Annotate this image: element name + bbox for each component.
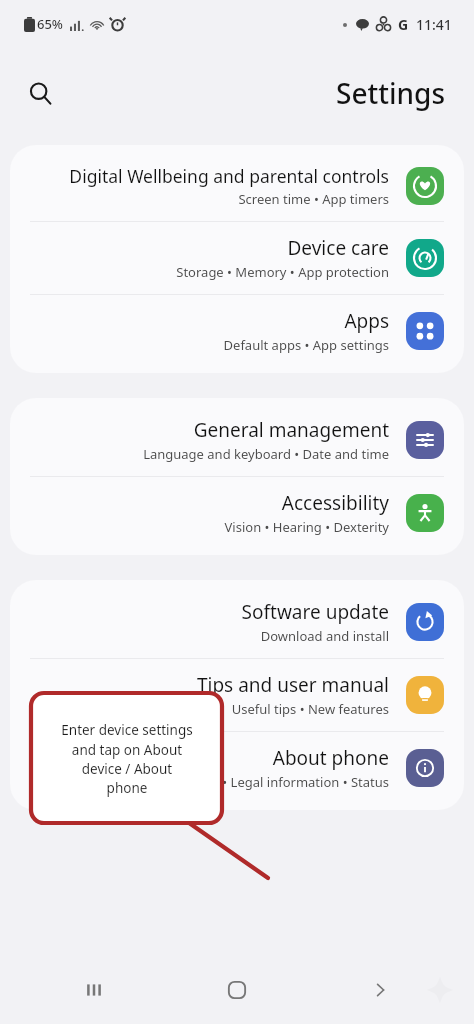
staticText: Settings bbox=[336, 74, 446, 112]
button[interactable]: General management bbox=[10, 404, 464, 476]
staticText: 11:41 bbox=[416, 15, 452, 34]
staticText: Phone name • Legal information • Status bbox=[141, 773, 389, 791]
staticText: G bbox=[398, 15, 409, 34]
staticText: Accessibility bbox=[281, 490, 389, 516]
button[interactable]: Accessibility bbox=[10, 477, 464, 549]
staticText: General management bbox=[193, 417, 389, 443]
staticText: Screen time • App timers bbox=[238, 190, 389, 208]
button[interactable]: Search bbox=[16, 69, 64, 117]
button[interactable]: About phone bbox=[10, 732, 464, 804]
staticText: Enter device settings and tap on About d… bbox=[61, 721, 193, 797]
staticText: About phone bbox=[272, 745, 389, 771]
button[interactable]: Software update bbox=[10, 586, 464, 658]
button[interactable]: Back bbox=[356, 966, 404, 1014]
button[interactable]: Recents bbox=[70, 966, 118, 1014]
staticText: 65% bbox=[37, 15, 63, 33]
button[interactable]: Device care bbox=[10, 222, 464, 294]
staticText: Language and keyboard • Date and time bbox=[143, 445, 389, 463]
button[interactable]: Tips and user manual bbox=[10, 659, 464, 731]
staticText: Software update bbox=[241, 599, 389, 625]
button[interactable]: Apps bbox=[10, 295, 464, 367]
staticText: Device care bbox=[287, 235, 389, 261]
staticText: Default apps • App settings bbox=[223, 336, 389, 354]
button[interactable]: Home bbox=[213, 966, 261, 1014]
staticText: Apps bbox=[344, 308, 389, 334]
button[interactable]: Digital Wellbeing and parental controls bbox=[10, 151, 464, 221]
staticText: Tips and user manual bbox=[196, 672, 389, 698]
staticText: Download and install bbox=[260, 627, 389, 645]
staticText: Storage • Memory • App protection bbox=[176, 263, 389, 281]
staticText: Digital Wellbeing and parental controls bbox=[69, 164, 389, 188]
staticText: Vision • Hearing • Dexterity bbox=[224, 518, 389, 536]
staticText: Useful tips • New features bbox=[231, 700, 389, 718]
